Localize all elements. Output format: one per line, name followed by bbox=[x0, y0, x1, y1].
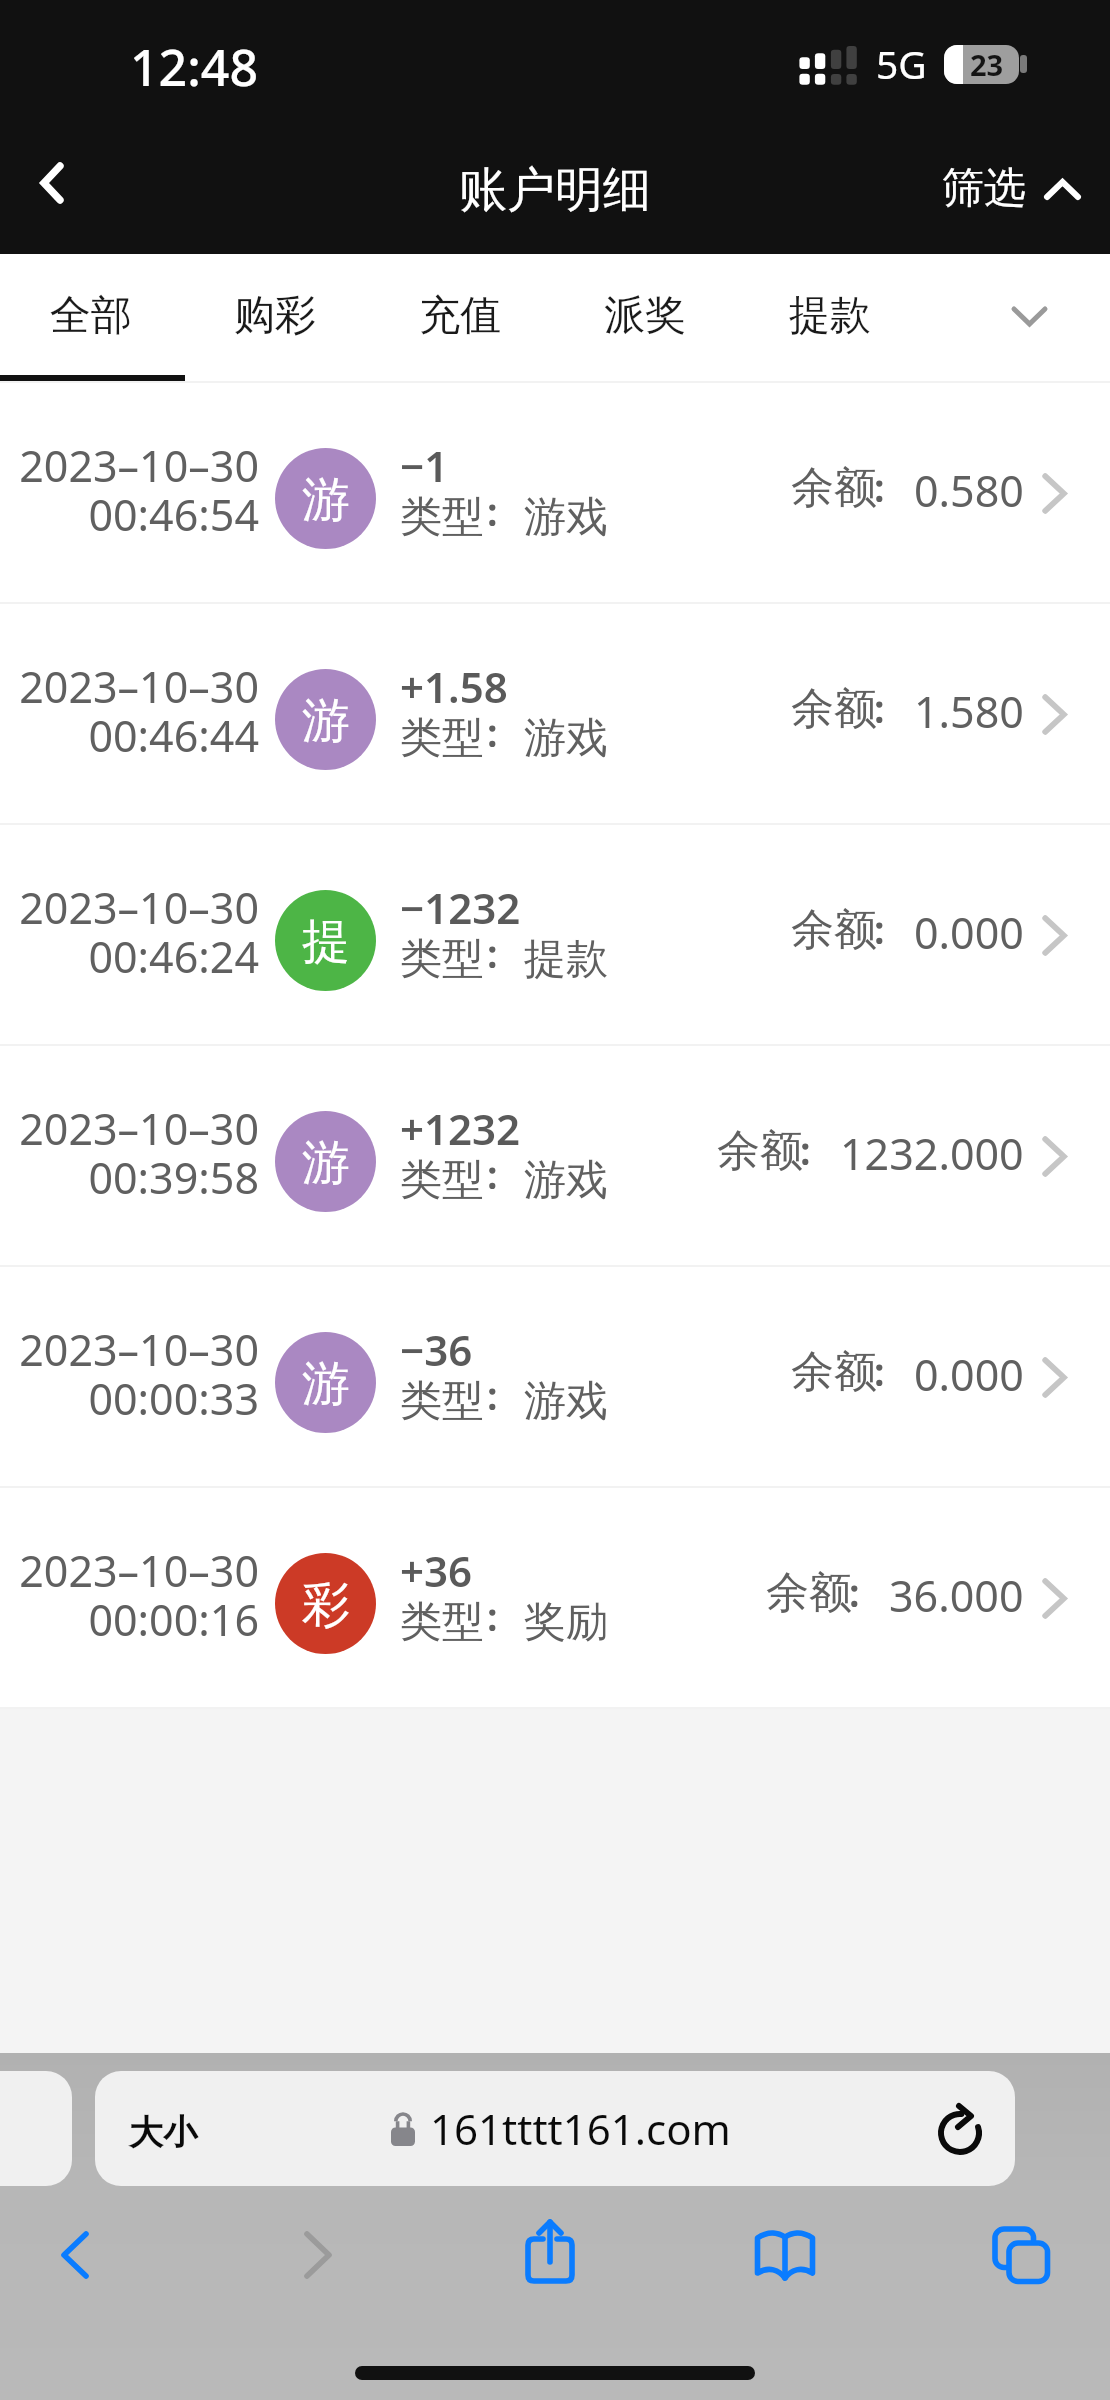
staticText: +1232 bbox=[400, 1100, 521, 1157]
staticText: 奖励 bbox=[524, 1596, 608, 1649]
staticText: 游戏 bbox=[524, 1375, 608, 1428]
button[interactable]: 大小 bbox=[95, 2071, 1015, 2186]
button[interactable]: 充值 bbox=[368, 254, 552, 383]
button[interactable]: 2023–10–30 00:46:54 bbox=[0, 383, 1110, 602]
staticText: 购彩 bbox=[234, 290, 316, 342]
staticText: 游 bbox=[302, 470, 350, 530]
button[interactable]: 2023–10–30 00:00:16 bbox=[0, 1488, 1110, 1707]
staticText: 类型 bbox=[400, 1154, 484, 1207]
button[interactable]: 2023–10–30 00:46:24 bbox=[0, 825, 1110, 1044]
staticText: 12:48 bbox=[130, 33, 258, 101]
staticText: 提款 bbox=[524, 933, 608, 986]
staticText: 类型 bbox=[400, 712, 484, 765]
staticText: 1.580 bbox=[914, 682, 1024, 741]
button[interactable]: More filters bbox=[979, 254, 1079, 383]
staticText: 36.000 bbox=[889, 1566, 1024, 1625]
staticText: 提 bbox=[302, 912, 350, 972]
staticText: 余额 bbox=[717, 1124, 803, 1178]
staticText: 类型 bbox=[400, 491, 484, 544]
staticText: 筛选 bbox=[942, 162, 1026, 215]
staticText: 派奖 bbox=[604, 290, 686, 342]
button[interactable]: 派奖 bbox=[553, 254, 737, 383]
staticText: 余额 bbox=[791, 903, 877, 957]
staticText: 2023–10–30 00:46:44 bbox=[19, 657, 259, 765]
button[interactable]: 提款 bbox=[738, 254, 922, 383]
staticText: 游戏 bbox=[524, 712, 608, 765]
button[interactable]: 购彩 bbox=[183, 254, 367, 383]
staticText: 0.580 bbox=[914, 461, 1024, 520]
staticText: 23 bbox=[970, 45, 1004, 84]
staticText: 游戏 bbox=[524, 491, 608, 544]
other: Signal strength bbox=[799, 45, 859, 85]
staticText: 游 bbox=[302, 1354, 350, 1414]
staticText: 彩 bbox=[302, 1575, 350, 1635]
staticText: 大小 bbox=[129, 2111, 197, 2154]
staticText: 类型 bbox=[400, 933, 484, 986]
staticText: +1.58 bbox=[400, 658, 508, 715]
button[interactable]: 2023–10–30 00:46:44 bbox=[0, 604, 1110, 823]
button[interactable]: Share bbox=[490, 2195, 610, 2315]
staticText: 游戏 bbox=[524, 1154, 608, 1207]
staticText: 2023–10–30 00:46:24 bbox=[19, 878, 259, 986]
staticText: 账户明细 bbox=[459, 160, 651, 220]
staticText: −1232 bbox=[400, 879, 521, 936]
staticText: 游 bbox=[302, 691, 350, 751]
staticText: 类型 bbox=[400, 1375, 484, 1428]
staticText: 余额 bbox=[791, 1345, 877, 1399]
staticText: 充值 bbox=[419, 290, 501, 342]
staticText: 全部 bbox=[50, 290, 132, 342]
staticText: 类型 bbox=[400, 1596, 484, 1649]
staticText: 2023–10–30 00:00:33 bbox=[19, 1320, 259, 1428]
staticText: 余额 bbox=[766, 1566, 852, 1620]
staticText: 余额 bbox=[791, 461, 877, 515]
button[interactable]: Back bbox=[15, 2195, 135, 2315]
button[interactable]: 2023–10–30 00:39:58 bbox=[0, 1046, 1110, 1265]
staticText: 161tttt161.com bbox=[430, 2100, 731, 2157]
staticText: 2023–10–30 00:39:58 bbox=[19, 1099, 259, 1207]
staticText: 提款 bbox=[789, 290, 871, 342]
staticText: 5G bbox=[876, 37, 927, 90]
staticText: 游 bbox=[302, 1133, 350, 1193]
staticText: 0.000 bbox=[914, 903, 1024, 962]
staticText: 2023–10–30 00:00:16 bbox=[19, 1541, 259, 1649]
staticText: −1 bbox=[400, 437, 449, 494]
button[interactable]: 筛选 bbox=[918, 140, 1110, 237]
button[interactable]: Bookmarks bbox=[725, 2195, 845, 2315]
button[interactable]: 2023–10–30 00:00:33 bbox=[0, 1267, 1110, 1486]
staticText: +36 bbox=[400, 1542, 473, 1599]
staticText: 2023–10–30 00:46:54 bbox=[19, 436, 259, 544]
staticText: 1232.000 bbox=[840, 1124, 1024, 1183]
staticText: 0.000 bbox=[914, 1345, 1024, 1404]
button[interactable]: Reload bbox=[930, 2102, 990, 2162]
button[interactable]: Tabs bbox=[961, 2195, 1081, 2315]
staticText: 余额 bbox=[791, 682, 877, 736]
staticText: −36 bbox=[400, 1321, 473, 1378]
button[interactable]: 全部 bbox=[0, 254, 183, 383]
button[interactable]: Forward bbox=[258, 2195, 378, 2315]
button[interactable]: Back bbox=[5, 124, 97, 246]
